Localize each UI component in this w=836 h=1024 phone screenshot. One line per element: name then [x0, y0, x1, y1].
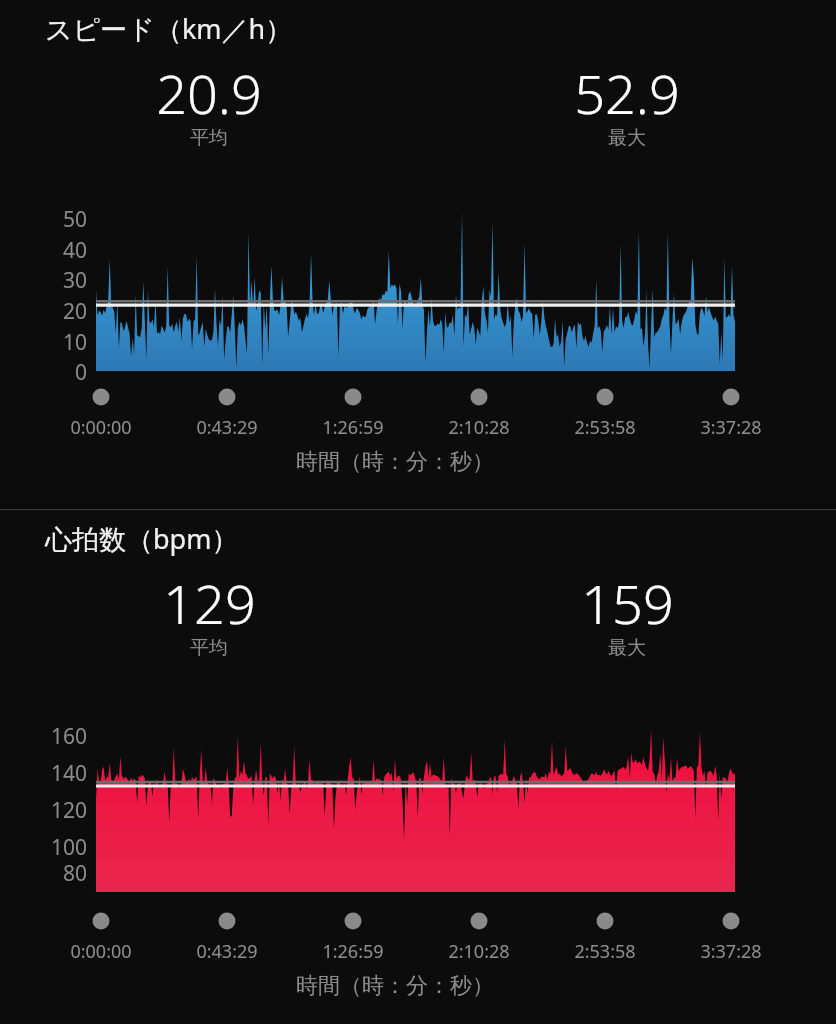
- staticText: 159: [581, 566, 674, 640]
- staticText: 40: [63, 236, 88, 265]
- button[interactable]: 129: [0, 566, 418, 664]
- staticText: 20.9: [156, 56, 262, 130]
- button[interactable]: 20.9: [0, 56, 418, 154]
- staticText: 時間（時：分：秒）: [296, 448, 494, 476]
- button[interactable]: 159: [418, 566, 836, 664]
- staticText: 160: [51, 722, 88, 751]
- staticText: 2:10:28: [448, 415, 510, 440]
- staticText: 20: [63, 297, 88, 326]
- staticText: 0:00:00: [70, 415, 132, 440]
- staticText: 0:43:29: [196, 939, 258, 964]
- staticText: 30: [63, 266, 88, 295]
- staticText: スピード（km／h）: [45, 10, 293, 47]
- staticText: 52.9: [574, 56, 680, 130]
- staticText: 3:37:28: [700, 415, 762, 440]
- staticText: 2:10:28: [448, 939, 510, 964]
- staticText: 80: [63, 859, 88, 888]
- staticText: 50: [63, 205, 88, 234]
- staticText: 時間（時：分：秒）: [296, 972, 494, 1000]
- staticText: 140: [51, 759, 88, 788]
- staticText: 0: [75, 358, 88, 387]
- staticText: 120: [51, 796, 88, 825]
- staticText: 129: [163, 566, 256, 640]
- staticText: 心拍数（bpm）: [45, 520, 239, 557]
- staticText: 1:26:59: [322, 415, 384, 440]
- staticText: 0:00:00: [70, 939, 132, 964]
- staticText: 2:53:58: [574, 415, 636, 440]
- staticText: 10: [63, 328, 88, 357]
- button[interactable]: スピード（km／h）: [0, 0, 836, 56]
- staticText: 最大: [608, 126, 646, 150]
- staticText: 3:37:28: [700, 939, 762, 964]
- button[interactable]: 52.9: [418, 56, 836, 154]
- staticText: 1:26:59: [322, 939, 384, 964]
- button[interactable]: 心拍数（bpm）: [0, 510, 836, 566]
- staticText: 平均: [190, 126, 228, 150]
- staticText: 100: [51, 833, 88, 862]
- staticText: 最大: [608, 636, 646, 660]
- staticText: 0:43:29: [196, 415, 258, 440]
- staticText: 平均: [190, 636, 228, 660]
- staticText: 2:53:58: [574, 939, 636, 964]
